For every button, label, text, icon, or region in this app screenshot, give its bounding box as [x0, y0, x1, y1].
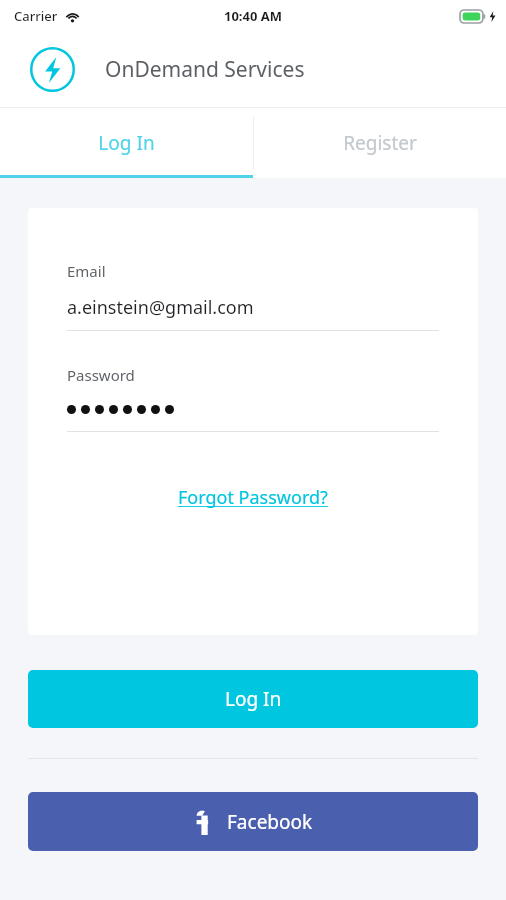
staticText: a.einstein@gmail.com	[67, 295, 254, 320]
staticText: 10:40 AM	[224, 7, 283, 25]
staticText: Log In	[225, 686, 282, 712]
button[interactable]: Register	[253, 108, 506, 178]
staticText: Email	[67, 261, 106, 281]
staticText: Facebook	[227, 809, 313, 835]
button[interactable]: Forgot Password?	[172, 479, 334, 516]
staticText: Carrier	[14, 7, 58, 25]
staticText: Register	[343, 130, 417, 156]
button[interactable]: Facebook	[28, 792, 478, 851]
staticText: Log In	[98, 130, 155, 156]
staticText: Forgot Password?	[178, 485, 328, 510]
staticText: Password	[67, 365, 135, 385]
button[interactable]: Log In	[28, 670, 478, 728]
button[interactable]: Log In	[0, 108, 253, 178]
staticText: OnDemand Services	[105, 55, 305, 84]
